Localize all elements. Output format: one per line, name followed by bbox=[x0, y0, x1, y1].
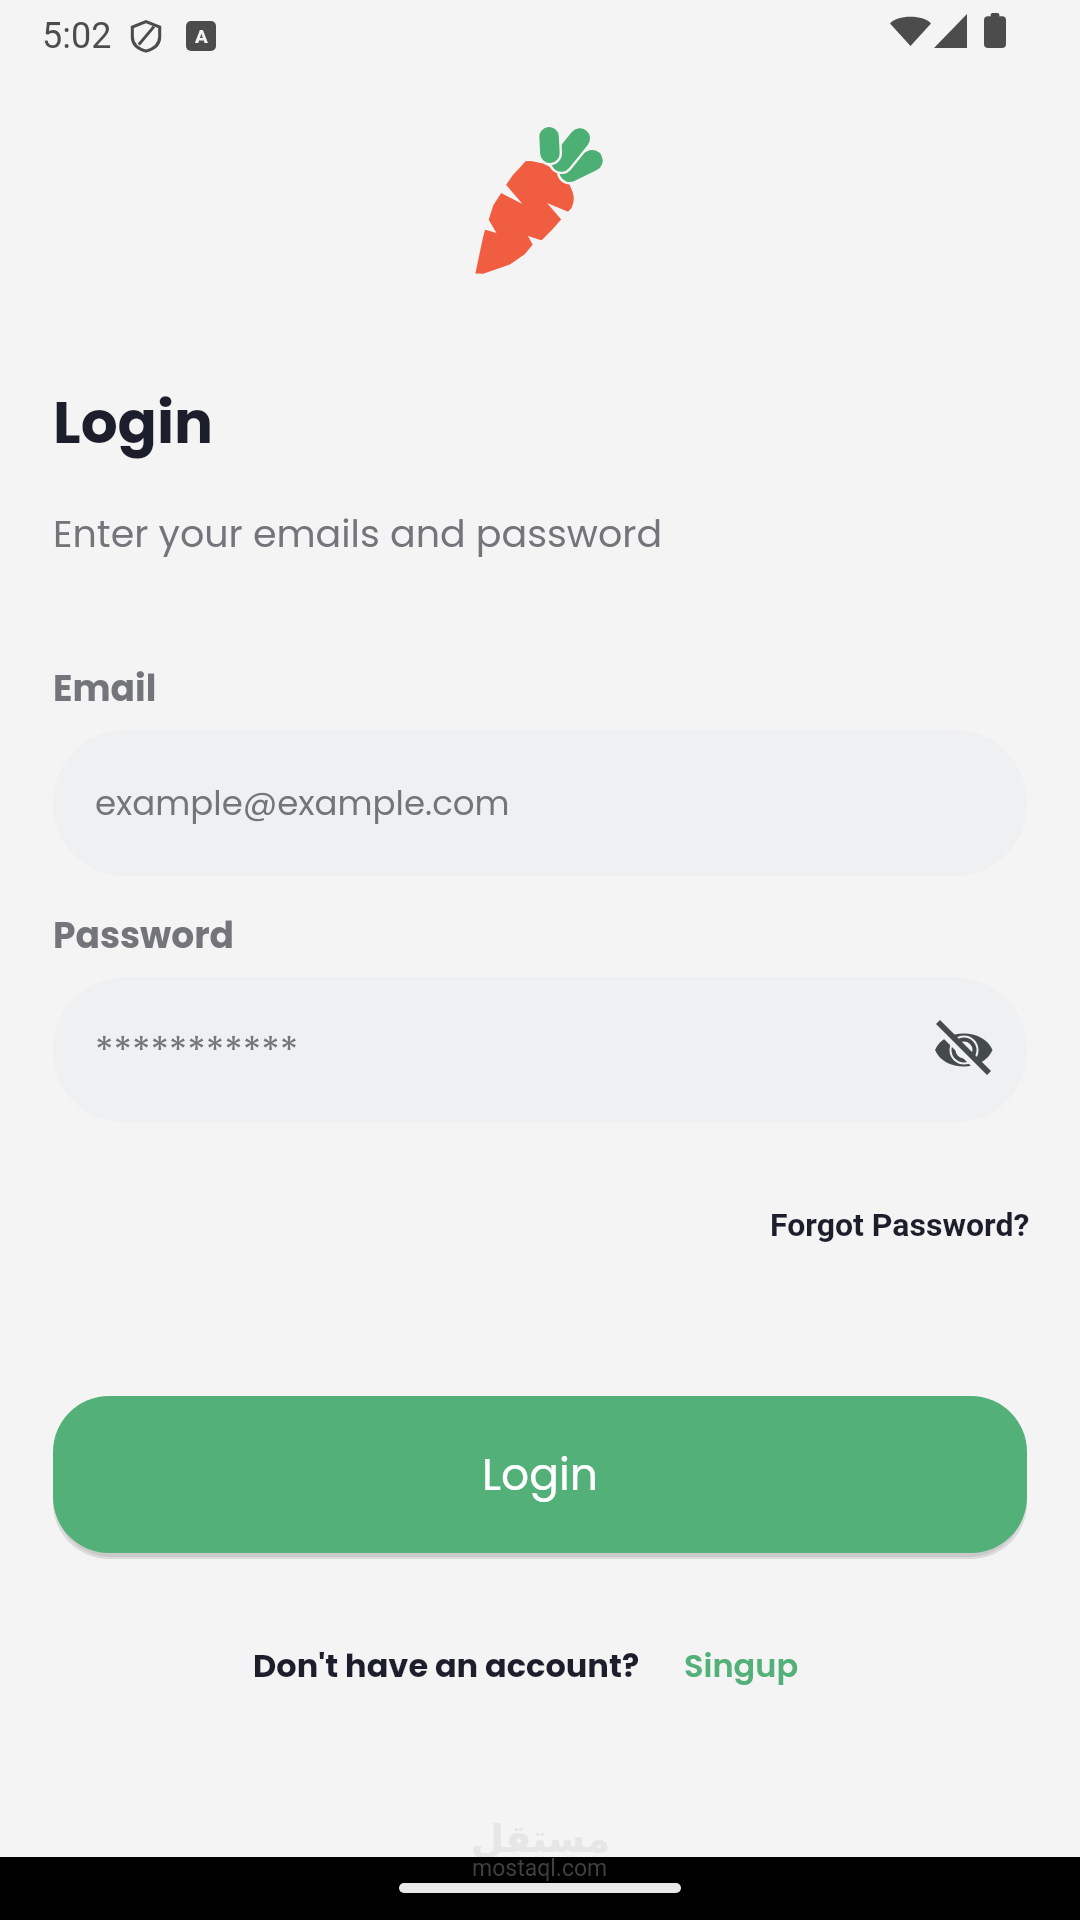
staticText: Forgot Password? bbox=[770, 1206, 1030, 1244]
staticText: Email bbox=[53, 663, 157, 713]
button[interactable]: Forgot Password? bbox=[770, 1206, 1030, 1244]
staticText: Singup bbox=[684, 1643, 799, 1688]
staticText: *********** bbox=[95, 1024, 299, 1077]
staticText: Login bbox=[482, 1444, 598, 1506]
staticText: A bbox=[195, 25, 208, 47]
staticText: Login bbox=[53, 382, 214, 463]
staticText: Don't have an account? bbox=[253, 1643, 640, 1688]
staticText: Enter your emails and password bbox=[53, 507, 663, 560]
button[interactable]: example@example.com bbox=[53, 730, 1027, 876]
button[interactable]: Singup bbox=[684, 1643, 799, 1688]
staticText: example@example.com bbox=[95, 779, 510, 827]
staticText: 5:02 bbox=[42, 15, 112, 57]
button[interactable]: Login bbox=[53, 1396, 1027, 1553]
staticText: Password bbox=[53, 910, 235, 960]
staticText: mostaql.com bbox=[472, 1855, 608, 1882]
staticText: مستقل bbox=[471, 1817, 610, 1861]
button[interactable]: *********** bbox=[53, 977, 1027, 1123]
button[interactable]: Show password bbox=[899, 991, 1017, 1109]
